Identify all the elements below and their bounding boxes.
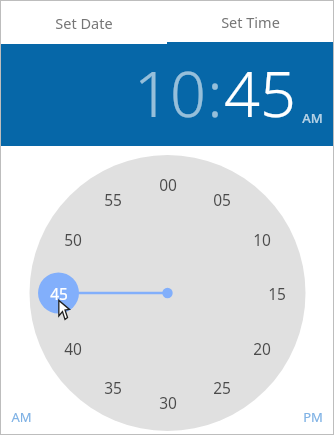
staticText: 25 [213,377,231,397]
button[interactable]: 45 [223,50,297,136]
staticText: 20 [253,338,271,358]
staticText: 10 [134,50,206,136]
button[interactable]: 10 [133,50,207,136]
staticText: 35 [104,377,122,397]
staticText: 40 [64,338,82,358]
button[interactable]: PM [303,408,333,434]
button[interactable]: 05 [207,189,237,209]
staticText: 15 [268,283,286,303]
staticText: 10 [253,229,271,249]
staticText: : [207,50,223,136]
button[interactable]: 35 [98,377,128,397]
button[interactable]: 20 [247,338,277,358]
button[interactable]: 15 [262,283,292,303]
button[interactable]: 45 [44,283,74,303]
staticText: AM [11,408,32,426]
staticText: 45 [50,283,68,303]
button[interactable]: Set Date [1,1,167,45]
staticText: 50 [64,229,82,249]
button[interactable]: 50 [58,229,88,249]
button[interactable]: AM [1,408,32,434]
button[interactable]: 55 [98,189,128,209]
staticText: Set Date [55,13,113,33]
button[interactable]: Set Time [167,1,333,45]
staticText: AM [302,109,323,127]
button[interactable]: 40 [58,338,88,358]
staticText: 00 [159,174,177,194]
staticText: 45 [224,50,296,136]
button[interactable]: 30 [153,392,183,412]
button[interactable]: 00 [153,174,183,194]
staticText: 05 [213,189,231,209]
staticText: 30 [159,392,177,412]
button[interactable]: 10 [247,229,277,249]
staticText: PM [303,408,323,426]
button[interactable]: AM [302,109,323,136]
staticText: 55 [104,189,122,209]
button[interactable]: 25 [207,377,237,397]
staticText: Set Time [221,12,280,32]
